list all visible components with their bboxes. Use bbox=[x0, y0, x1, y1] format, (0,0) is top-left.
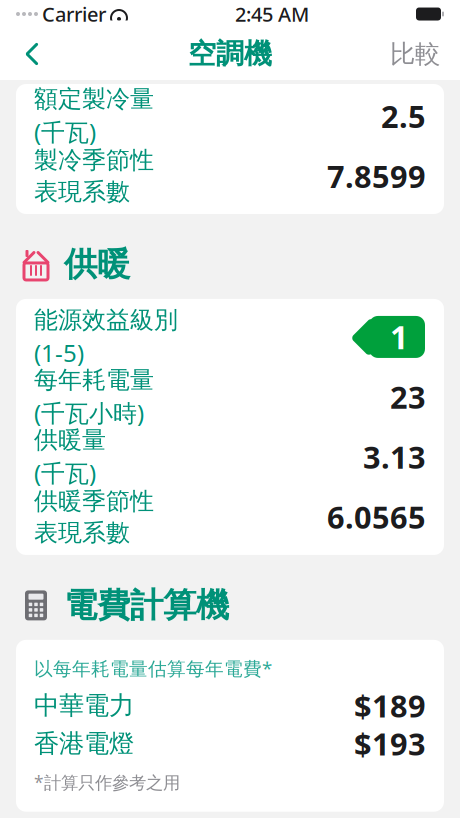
staticText: 表現系數 bbox=[34, 518, 130, 547]
staticText: 1 bbox=[390, 316, 408, 358]
staticText: 額定製冷量 bbox=[34, 84, 154, 114]
staticText: (千瓦) bbox=[34, 457, 96, 489]
staticText: Carrier bbox=[42, 1, 106, 27]
staticText: 中華電力 bbox=[34, 690, 134, 721]
staticText: 製冷季節性 bbox=[34, 145, 154, 175]
staticText: 3.13 bbox=[363, 437, 426, 477]
staticText: *計算只作參考之用 bbox=[34, 771, 180, 794]
staticText: 能源效益級別 bbox=[34, 305, 178, 335]
staticText: 2.5 bbox=[381, 96, 426, 136]
staticText: (1-5) bbox=[34, 337, 84, 369]
staticText: 23 bbox=[390, 377, 426, 417]
staticText: 表現系數 bbox=[34, 177, 130, 206]
staticText: 比較 bbox=[390, 38, 440, 69]
staticText: $193 bbox=[354, 723, 426, 764]
staticText: 2:45 AM bbox=[235, 1, 309, 27]
staticText: (千瓦小時) bbox=[34, 397, 144, 429]
staticText: (千瓦) bbox=[34, 116, 96, 148]
staticText: $189 bbox=[354, 685, 426, 726]
staticText: 供暖量 bbox=[34, 425, 106, 455]
staticText: 電費計算機 bbox=[64, 585, 229, 626]
staticText: 以每年耗電量估算每年電費* bbox=[34, 656, 272, 681]
staticText: 每年耗電量 bbox=[34, 365, 154, 395]
staticText: 供暖季節性 bbox=[34, 486, 154, 516]
staticText: 香港電燈 bbox=[34, 728, 134, 759]
button[interactable]: Back bbox=[10, 32, 54, 76]
staticText: 6.0565 bbox=[327, 497, 426, 537]
button[interactable]: 比較 bbox=[380, 32, 450, 76]
staticText: 空調機 bbox=[188, 37, 272, 71]
staticText: 7.8599 bbox=[327, 156, 426, 196]
staticText: 供暖 bbox=[64, 244, 130, 285]
